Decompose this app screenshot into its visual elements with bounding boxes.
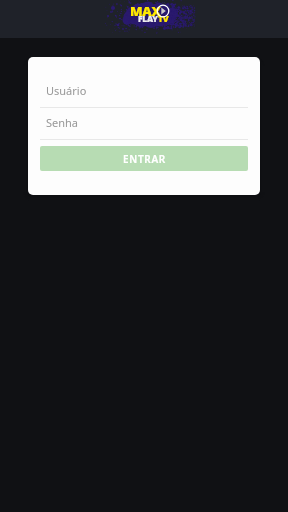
button[interactable]: Senha bbox=[40, 108, 248, 136]
staticText: Usuário bbox=[46, 83, 87, 98]
other: Max Flay TV bbox=[0, 0, 288, 38]
button[interactable]: ENTRAR bbox=[40, 146, 248, 171]
staticText: Senha bbox=[46, 115, 79, 130]
button[interactable]: Usuário bbox=[40, 76, 248, 104]
staticText: MAX bbox=[130, 2, 161, 20]
staticText: FLAY bbox=[138, 13, 158, 25]
button[interactable]: Max Flay TV logo bbox=[105, 0, 195, 33]
staticText: ENTRAR bbox=[123, 152, 166, 166]
staticText: TV bbox=[158, 13, 169, 25]
